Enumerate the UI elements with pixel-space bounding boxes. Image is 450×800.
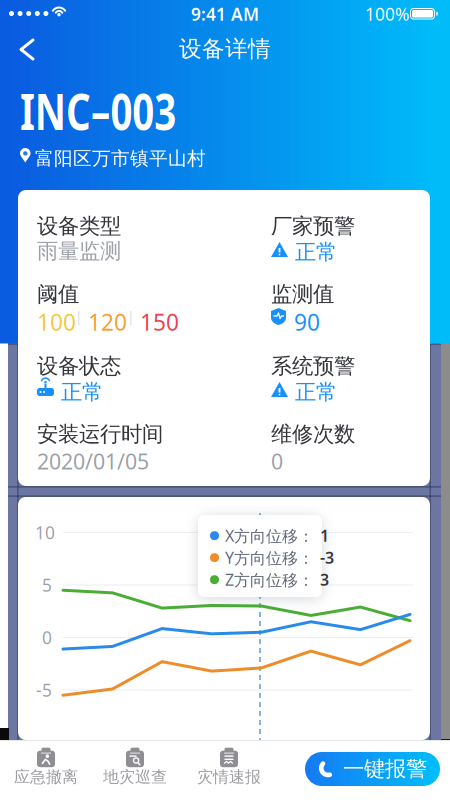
staticText: 一键报警 bbox=[343, 756, 427, 782]
staticText: 100% bbox=[365, 2, 409, 25]
staticText: 阈值 bbox=[37, 281, 79, 307]
staticText: 正常 bbox=[295, 239, 337, 265]
staticText: 设备状态 bbox=[37, 353, 121, 379]
staticText: 150 bbox=[140, 307, 179, 337]
staticText: Y方向位移： bbox=[225, 547, 314, 568]
staticText: 安装运行时间 bbox=[37, 421, 163, 447]
staticText: 100 bbox=[37, 307, 76, 337]
staticText: 监测值 bbox=[271, 281, 334, 307]
button[interactable]: 一键报警 bbox=[305, 752, 440, 786]
button[interactable]: 灾情速报 bbox=[189, 747, 269, 787]
staticText: 正常 bbox=[61, 379, 103, 405]
staticText: 5 bbox=[42, 573, 52, 596]
staticText: -3 bbox=[320, 547, 334, 568]
button[interactable]: 地灾巡查 bbox=[95, 747, 175, 787]
button[interactable]: 应急撤离 bbox=[6, 747, 86, 787]
staticText: 设备类型 bbox=[37, 213, 121, 239]
staticText: 0 bbox=[42, 626, 52, 649]
staticText: 正常 bbox=[295, 379, 337, 405]
staticText: 10 bbox=[35, 521, 55, 544]
staticText: 应急撤离 bbox=[14, 767, 78, 787]
staticText: 9:41 AM bbox=[191, 2, 259, 25]
staticText: 富阳区万市镇平山村 bbox=[35, 147, 206, 170]
staticText: 120 bbox=[88, 307, 127, 337]
staticText: -5 bbox=[36, 678, 52, 701]
staticText: X方向位移： bbox=[225, 525, 314, 546]
staticText: 雨量监测 bbox=[37, 238, 121, 264]
staticText: 2020/01/05 bbox=[37, 447, 149, 475]
button[interactable]: Back bbox=[13, 32, 41, 67]
staticText: 90 bbox=[294, 307, 320, 337]
staticText: 维修次数 bbox=[271, 421, 355, 447]
staticText: 灾情速报 bbox=[197, 767, 261, 787]
staticText: INC–003 bbox=[20, 78, 220, 143]
staticText: 系统预警 bbox=[271, 353, 355, 379]
staticText: 厂家预警 bbox=[271, 213, 355, 239]
staticText: 0 bbox=[271, 447, 283, 475]
staticText: 设备详情 bbox=[179, 35, 271, 63]
staticText: 地灾巡查 bbox=[103, 767, 167, 787]
staticText: Z方向位移： bbox=[225, 569, 314, 590]
staticText: 1 bbox=[320, 525, 329, 546]
staticText: 3 bbox=[320, 569, 329, 590]
